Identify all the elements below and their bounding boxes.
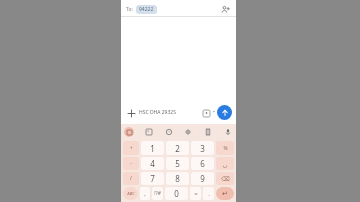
staticText: / [130,175,132,182]
button[interactable]: Settings [183,127,193,137]
staticText: 7 [150,173,155,184]
staticText: !?# [154,190,161,197]
button[interactable]: Emoji [200,107,212,119]
staticText: - [130,160,132,167]
button[interactable]: HSC DHA 2932S [139,109,200,116]
staticText: ␣ [223,160,227,167]
button[interactable]: 4 [141,157,164,170]
button[interactable]: - [123,157,139,170]
staticText: 6 [200,158,205,169]
button[interactable]: 6 [191,157,214,170]
button[interactable]: ↵ [216,187,234,200]
staticText: To: [126,6,133,13]
button[interactable]: % [216,141,234,155]
staticText: = [194,190,198,198]
button[interactable]: Keyboard settings [124,127,134,137]
button[interactable]: Voice input [223,127,233,137]
staticText: 1 [150,143,155,154]
staticText: 2 [175,143,180,154]
button[interactable]: . [203,187,214,200]
staticText: HSC DHA 2932S [139,109,176,116]
staticText: , [144,190,146,198]
button[interactable]: Add recipient [219,3,231,15]
staticText: 9 [200,173,205,184]
staticText: ABC [127,191,135,196]
button[interactable]: ␣ [216,157,234,170]
staticText: 0 [174,188,179,199]
button[interactable]: 7 [141,172,164,185]
button[interactable]: !?# [152,187,163,200]
button[interactable]: 2 [166,141,189,155]
staticText: ↵ [222,190,228,198]
staticText: 8 [175,173,180,184]
button[interactable]: Add attachment [125,107,137,119]
staticText: + [130,145,133,152]
button[interactable]: Emoji [164,127,174,137]
button[interactable]: Send [217,105,232,120]
staticText: 3 [200,143,205,154]
button[interactable]: 1 [141,141,164,155]
button[interactable]: , [140,187,150,200]
button[interactable]: ABC [123,187,138,200]
staticText: ⌫ [221,175,230,182]
staticText: 94222 [139,6,154,13]
button[interactable]: ⌫ [216,172,234,185]
staticText: % [223,145,228,152]
staticText: • [213,109,215,116]
staticText: 4 [150,158,155,169]
button[interactable]: 0 [165,187,188,200]
staticText: 5 [175,158,180,169]
button[interactable]: 5 [166,157,189,170]
button[interactable]: 8 [166,172,189,185]
button[interactable]: Stickers [144,127,154,137]
button[interactable]: / [123,172,139,185]
staticText: . [208,190,210,198]
button[interactable]: 9 [191,172,214,185]
button[interactable]: 94222 [136,5,157,14]
button[interactable]: + [123,141,139,155]
button[interactable]: 3 [191,141,214,155]
button[interactable]: Clipboard [203,127,213,137]
button[interactable]: = [190,187,201,200]
